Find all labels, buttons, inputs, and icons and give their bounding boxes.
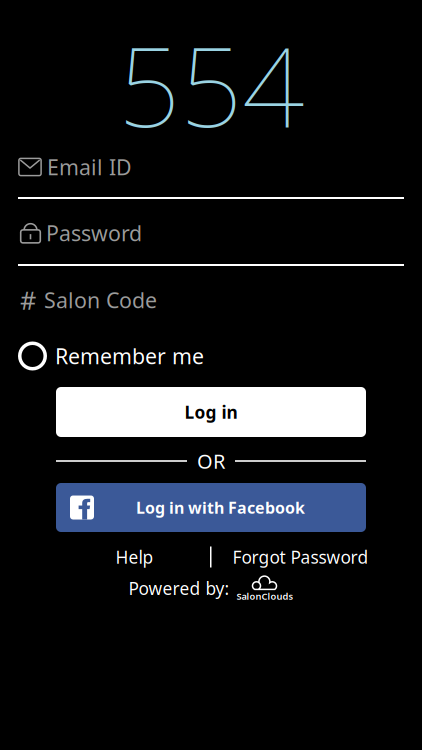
staticText: Powered by:: [128, 577, 229, 600]
staticText: OR: [197, 448, 225, 474]
staticText: Log in: [184, 400, 237, 423]
staticText: #: [20, 283, 36, 317]
button[interactable]: Remember me: [0, 342, 422, 370]
staticText: SalonClouds: [236, 590, 293, 602]
staticText: Password: [46, 219, 142, 247]
button[interactable]: Forgot Password: [211, 546, 389, 568]
button[interactable]: Log in with Facebook: [56, 483, 366, 532]
button[interactable]: Help: [59, 546, 210, 568]
staticText: Email ID: [47, 153, 132, 181]
staticText: Salon Code: [44, 286, 157, 314]
button[interactable]: Log in: [56, 387, 366, 437]
staticText: Remember me: [55, 342, 204, 370]
staticText: 554: [118, 12, 304, 157]
staticText: Log in with Facebook: [136, 497, 305, 518]
staticText: Forgot Password: [232, 545, 368, 568]
staticText: Help: [115, 545, 153, 568]
